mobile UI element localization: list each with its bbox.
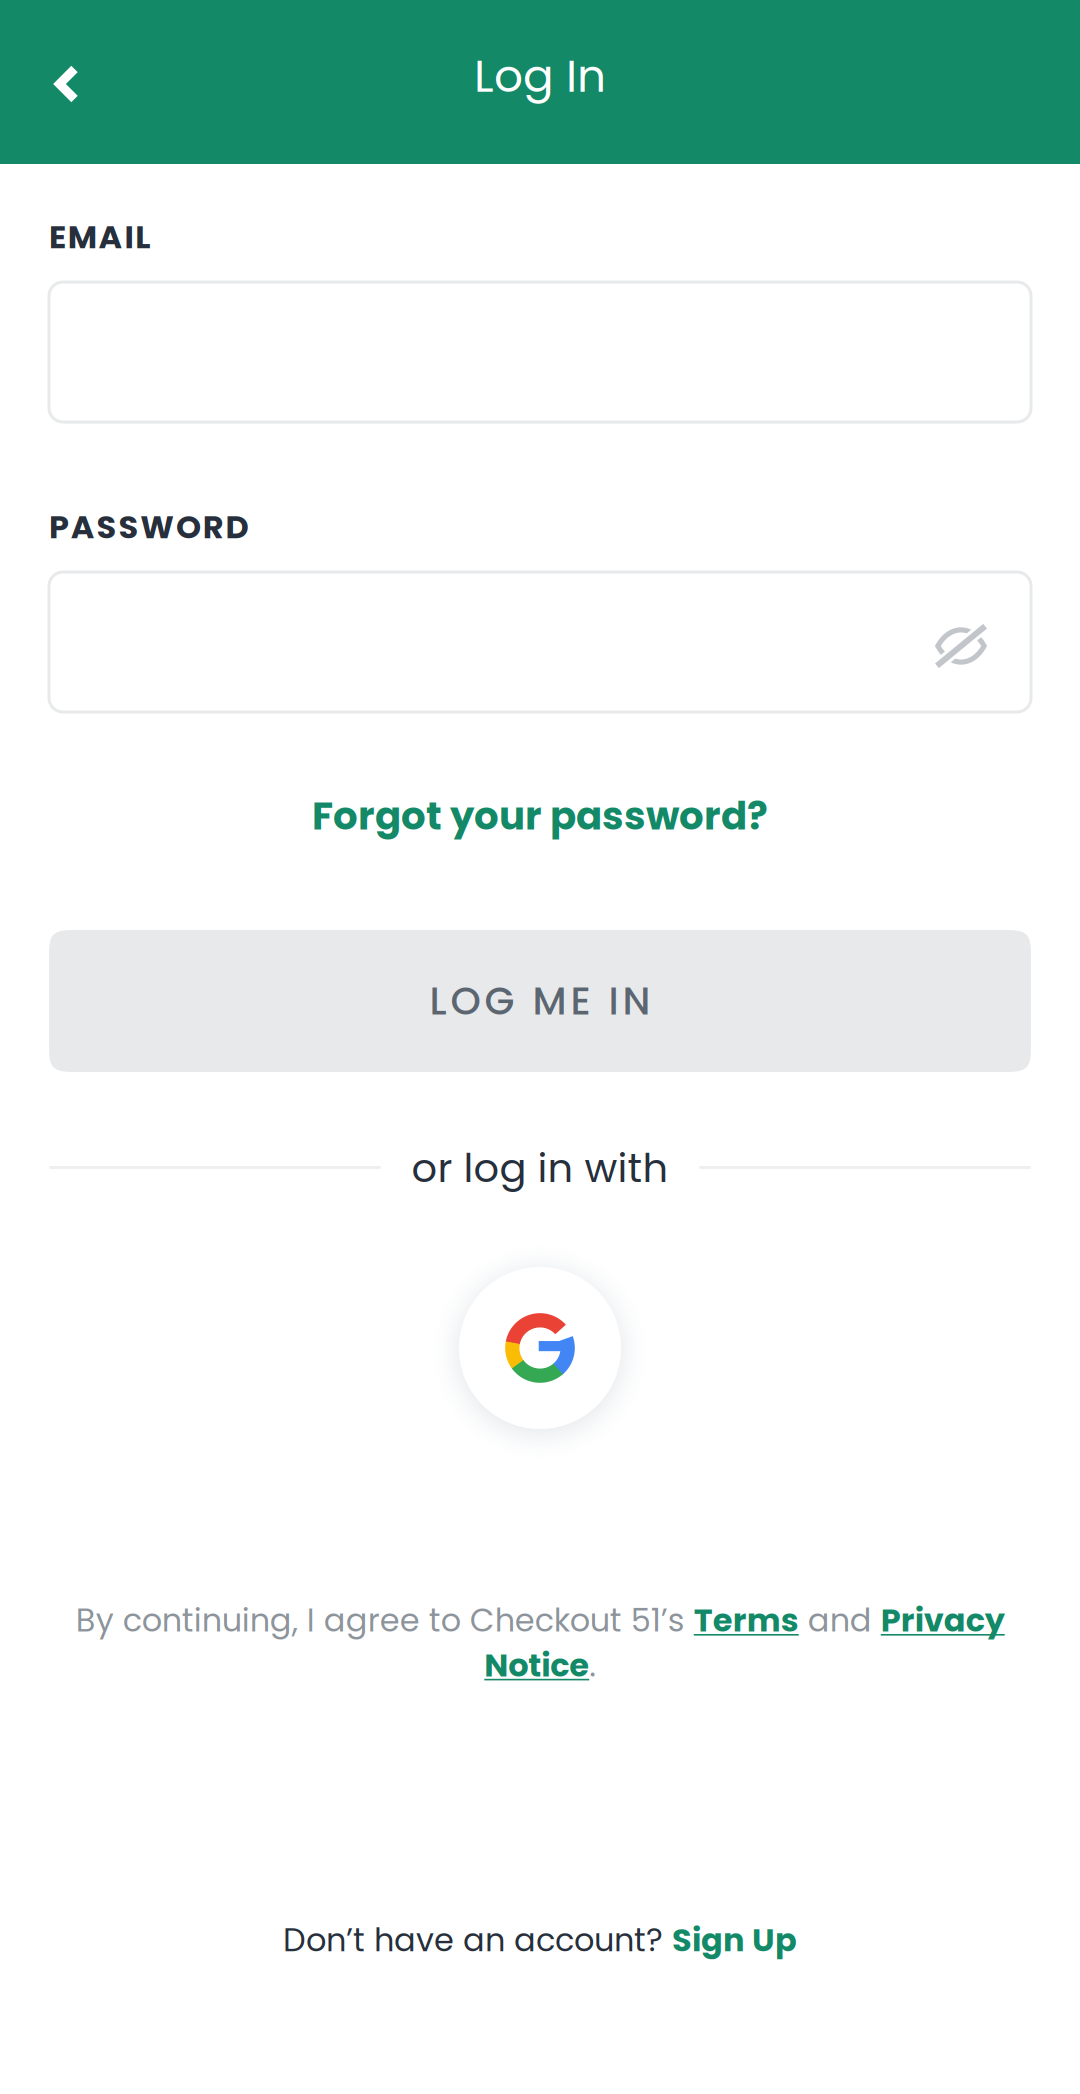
staticText: EMAIL xyxy=(49,215,150,259)
button[interactable]: Log in with Google xyxy=(440,1248,640,1448)
button[interactable]: Show password xyxy=(906,591,1016,701)
staticText: LOG ME IN xyxy=(429,974,650,1028)
staticText: or log in with xyxy=(411,1140,668,1196)
staticText: PASSWORD xyxy=(49,505,249,549)
button[interactable]: Forgot your password? xyxy=(49,781,1031,851)
staticText: Log In xyxy=(474,44,606,108)
button[interactable]: Back xyxy=(15,32,119,136)
staticText: By continuing, I agree to Checkout 51’s … xyxy=(75,1598,1004,1688)
staticText: Forgot your password? xyxy=(312,789,768,843)
staticText: Don’t have an account? Sign Up xyxy=(283,1918,797,1962)
button[interactable]: Don’t have an account? Sign Up xyxy=(0,1905,1080,1975)
button[interactable]: LOG ME IN xyxy=(49,930,1031,1072)
